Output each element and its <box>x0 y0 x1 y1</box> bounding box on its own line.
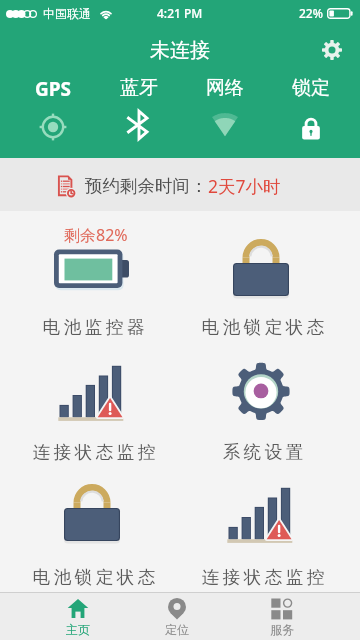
staticText: 网络 <box>206 76 244 100</box>
staticText: 连接状态监控 <box>200 566 326 586</box>
button[interactable]: 电池锁定状态 <box>7 461 176 586</box>
staticText: 连接状态监控 <box>31 441 157 461</box>
button[interactable]: Settings <box>314 32 350 68</box>
staticText: 系统设置 <box>221 441 305 461</box>
button[interactable]: 系统设置 <box>176 336 345 461</box>
staticText: 电池锁定状态 <box>31 566 157 586</box>
staticText: 锁定 <box>292 76 330 100</box>
staticText: 蓝牙 <box>120 76 158 100</box>
staticText: 4:21 PM <box>157 5 203 21</box>
staticText: 电池监控器 <box>41 316 146 336</box>
button[interactable]: 连接状态监控 <box>7 336 176 461</box>
button[interactable]: 网络 <box>182 70 268 158</box>
button[interactable]: 锁定 <box>268 70 354 158</box>
button[interactable]: 电池锁定状态 <box>176 211 345 336</box>
staticText: 22% <box>299 5 323 21</box>
staticText: 中国联通 <box>43 6 91 21</box>
button[interactable]: 主页 <box>0 593 120 640</box>
staticText: 2天7小时 <box>208 174 281 198</box>
button[interactable]: GPS <box>10 70 96 158</box>
button[interactable]: 定位 <box>120 593 240 640</box>
button[interactable]: 连接状态监控 <box>176 461 345 586</box>
staticText: 未连接 <box>150 38 210 63</box>
staticText: 电池锁定状态 <box>200 316 326 336</box>
button[interactable]: 服务 <box>240 593 360 640</box>
staticText: 定位 <box>165 622 189 637</box>
staticText: 预约剩余时间： <box>85 175 208 197</box>
staticText: 剩余82% <box>64 224 128 246</box>
button[interactable]: 剩余82% <box>7 211 176 336</box>
staticText: GPS <box>35 76 72 102</box>
button[interactable]: 蓝牙 <box>96 70 182 158</box>
staticText: 服务 <box>270 622 294 637</box>
staticText: 主页 <box>66 622 90 637</box>
